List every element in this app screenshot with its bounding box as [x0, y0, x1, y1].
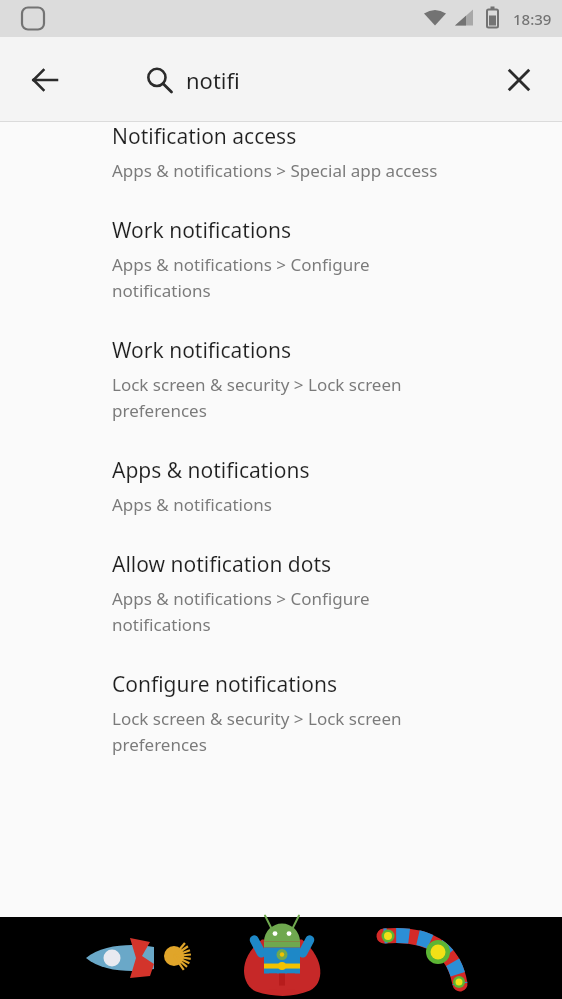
staticText: Apps & notifications: [112, 456, 310, 485]
button[interactable]: Clear search: [493, 54, 545, 106]
staticText: Apps & notifications > Configure notific…: [112, 253, 370, 302]
staticText: Work notifications: [112, 216, 292, 245]
staticText: Lock screen & security > Lock screen pre…: [112, 373, 402, 422]
staticText: notifi: [186, 65, 240, 95]
staticText: Apps & notifications > Configure notific…: [112, 587, 370, 636]
button[interactable]: Apps & notifications: [0, 440, 562, 534]
staticText: Lock screen & security > Lock screen pre…: [112, 707, 402, 756]
staticText: Configure notifications: [112, 670, 337, 699]
button[interactable]: Back: [18, 53, 72, 107]
staticText: Apps & notifications: [112, 493, 272, 516]
staticText: Notification access: [112, 122, 297, 151]
button[interactable]: Notification access: [0, 106, 562, 200]
button[interactable]: Allow notification dots: [0, 534, 562, 654]
staticText: Apps & notifications > Special app acces…: [112, 159, 438, 182]
button[interactable]: Work notifications: [0, 200, 562, 320]
staticText: Work notifications: [112, 336, 292, 365]
staticText: Allow notification dots: [112, 550, 332, 579]
button[interactable]: Configure notifications: [0, 654, 562, 774]
staticText: 18:39: [513, 9, 552, 29]
button[interactable]: Work notifications: [0, 320, 562, 440]
